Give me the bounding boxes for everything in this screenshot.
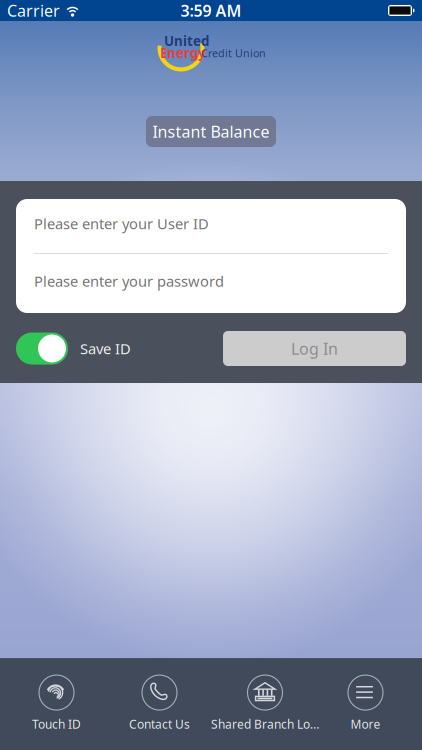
button[interactable]: Shared Branch Lo… xyxy=(211,658,314,750)
staticText: Save ID xyxy=(80,339,131,358)
staticText: United xyxy=(164,32,209,50)
staticText: Instant Balance xyxy=(152,121,269,142)
button[interactable]: Touch ID xyxy=(5,658,108,750)
staticText: Touch ID xyxy=(32,716,81,732)
staticText: More xyxy=(350,716,380,732)
staticText: 3:59 AM xyxy=(180,0,241,21)
button[interactable]: Save ID xyxy=(16,332,143,364)
button[interactable]: Contact Us xyxy=(108,658,211,750)
button[interactable]: Log In xyxy=(223,331,406,366)
staticText: Shared Branch Lo… xyxy=(211,716,319,732)
staticText: Energy xyxy=(160,44,206,62)
staticText: Please enter your password xyxy=(34,271,224,291)
button[interactable]: More xyxy=(314,658,417,750)
button[interactable]: Instant Balance xyxy=(146,116,276,147)
staticText: Log In xyxy=(291,338,338,359)
staticText: Credit Union xyxy=(201,46,266,60)
staticText: Contact Us xyxy=(129,716,190,732)
staticText: Carrier xyxy=(7,0,60,21)
staticText: Please enter your User ID xyxy=(34,214,209,233)
